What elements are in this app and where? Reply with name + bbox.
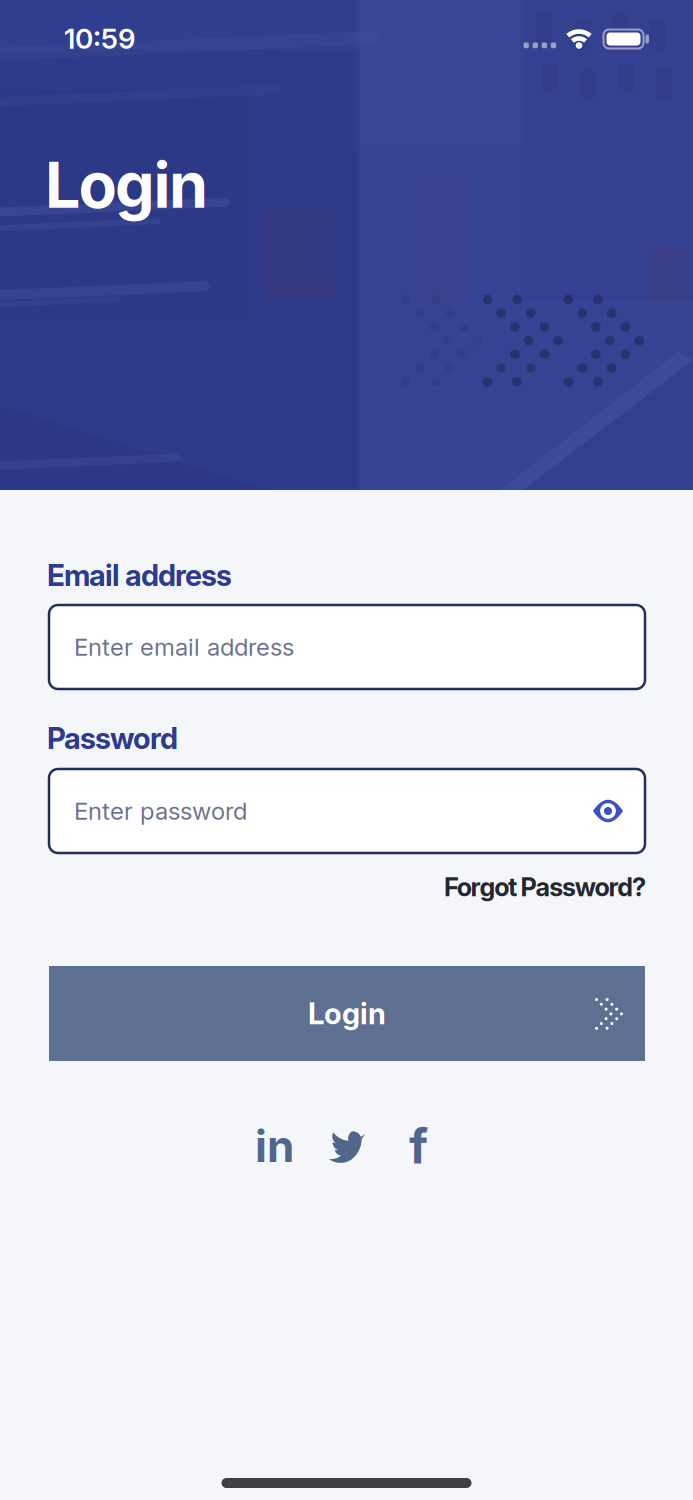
button[interactable]: Login [49, 966, 645, 1061]
staticText: Email address [47, 558, 232, 593]
staticText: Password [47, 721, 178, 756]
button[interactable]: f [394, 1124, 442, 1168]
button[interactable]: in [250, 1124, 298, 1168]
staticText: in [255, 1120, 294, 1172]
button[interactable]: Forgot Password? [444, 872, 646, 902]
staticText: Enter password [74, 797, 247, 825]
button[interactable] [322, 1124, 370, 1168]
staticText: Login [45, 148, 208, 222]
staticText: 10:59 [64, 22, 136, 55]
button[interactable] [593, 800, 623, 822]
button[interactable]: Enter password [49, 769, 645, 853]
staticText: Forgot Password? [444, 872, 646, 902]
staticText: Login [308, 996, 386, 1031]
staticText: f [409, 1118, 428, 1174]
staticText: Enter email address [74, 633, 294, 661]
button[interactable]: Enter email address [49, 605, 645, 689]
